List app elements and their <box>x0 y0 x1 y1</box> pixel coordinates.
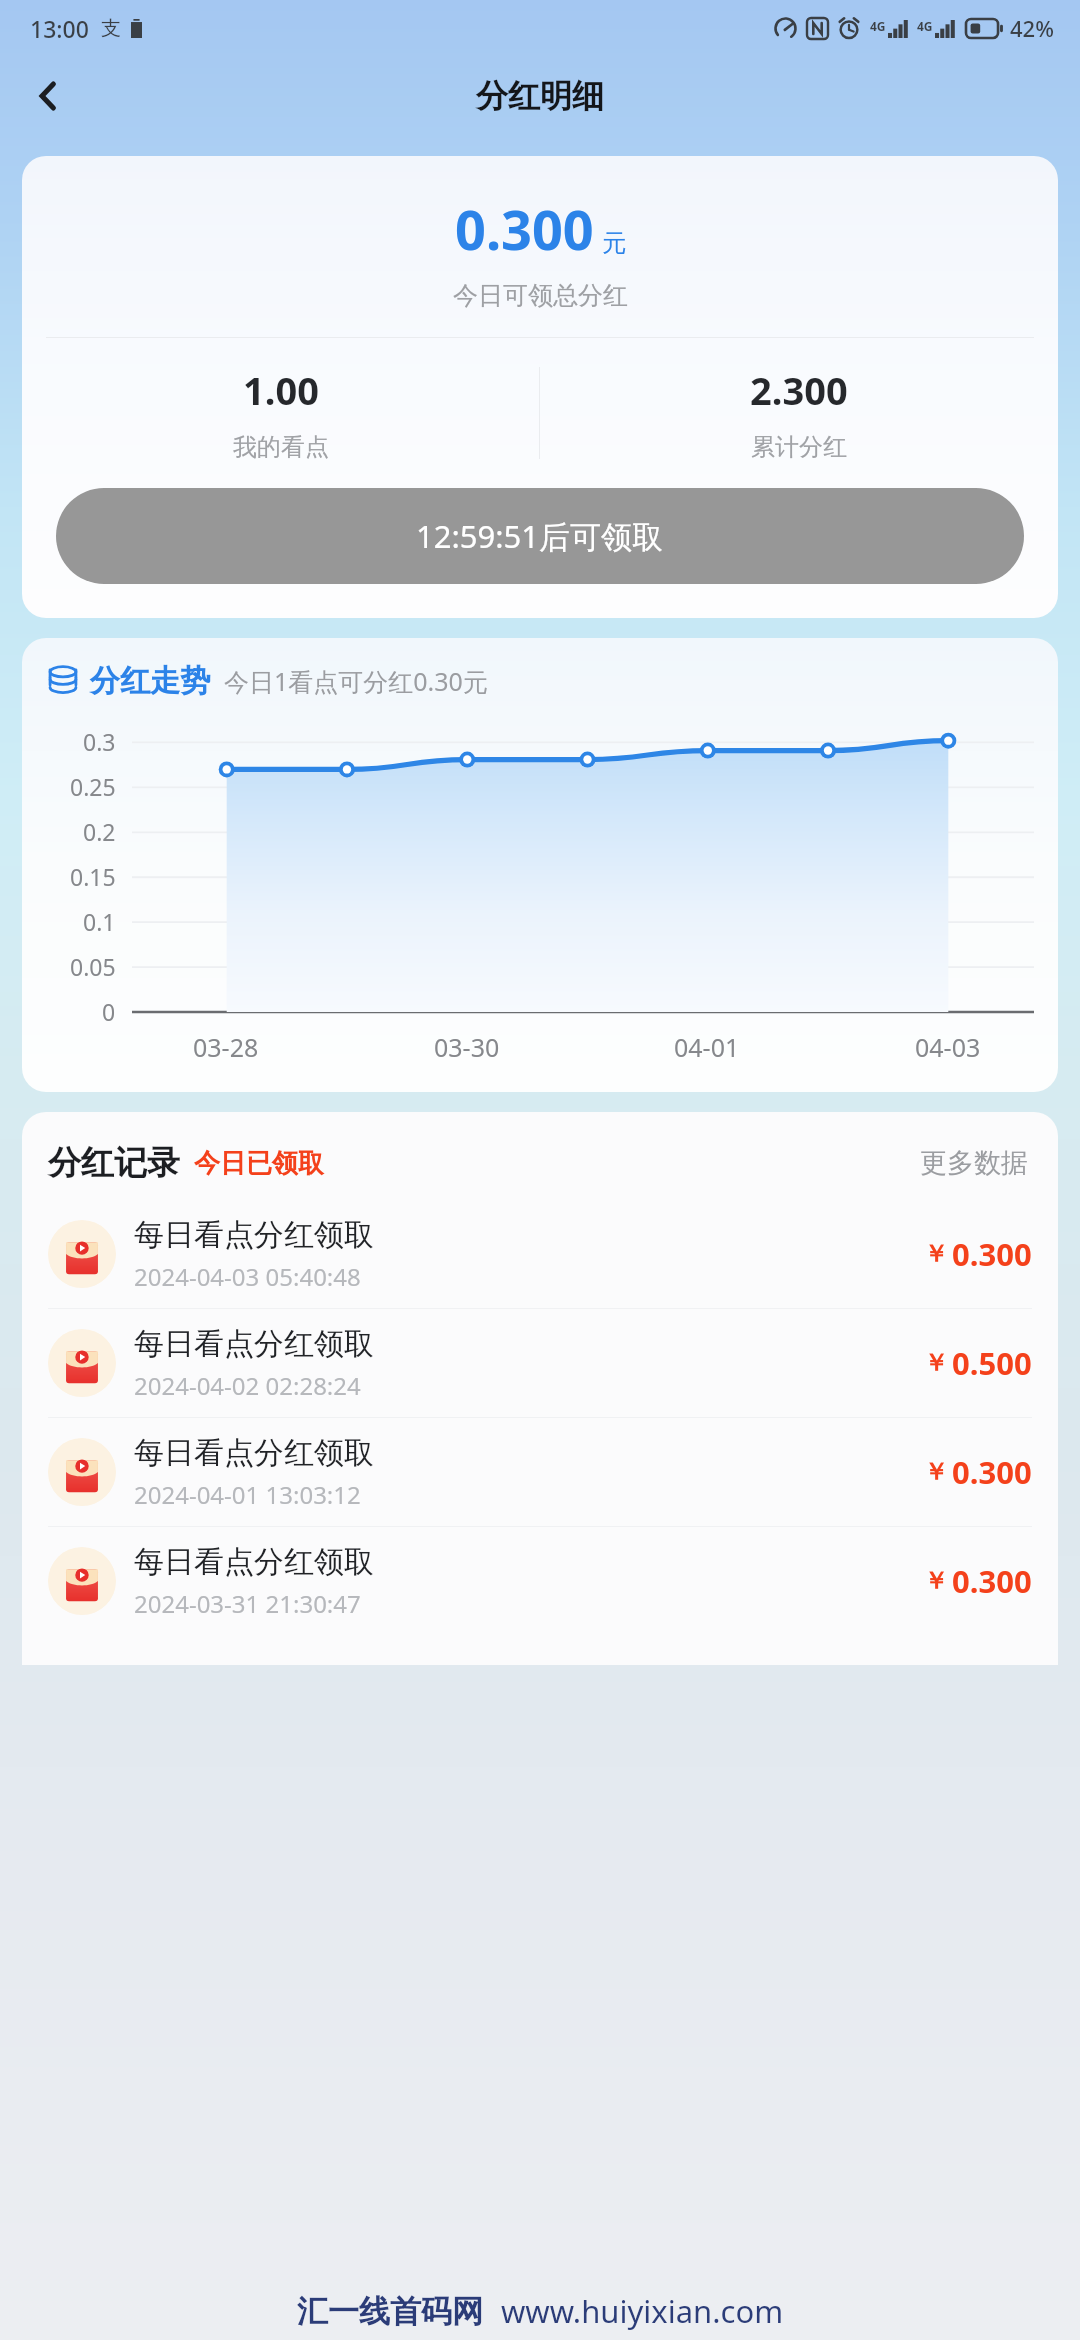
staticText: ￥ <box>924 1348 948 1378</box>
staticText: 分红明细 <box>476 76 604 116</box>
staticText: 0.300 <box>952 1233 1032 1275</box>
button[interactable]: 12:59:51后可领取 <box>56 488 1024 584</box>
staticText: www.huiyixian.com <box>501 2290 784 2332</box>
staticText: 每日看点分红领取 <box>134 1434 374 1472</box>
staticText: 0.500 <box>952 1342 1032 1384</box>
button[interactable]: 返回 <box>12 60 84 132</box>
staticText: 0.2 <box>83 816 116 847</box>
staticText: 42% <box>1010 13 1054 43</box>
staticText: 支 <box>101 16 121 41</box>
staticText: 03-30 <box>434 1030 500 1064</box>
staticText: 分红记录 <box>48 1142 180 1184</box>
staticText: 04-01 <box>674 1030 740 1064</box>
staticText: 4G <box>917 18 933 34</box>
staticText: 0 <box>102 996 116 1027</box>
staticText: 0.300 <box>952 1451 1032 1493</box>
staticText: 0.300 <box>455 192 594 266</box>
staticText: 每日看点分红领取 <box>134 1216 374 1254</box>
staticText: 今日已领取 <box>194 1147 324 1180</box>
button[interactable]: 更多数据 <box>916 1142 1032 1184</box>
staticText: 4G <box>870 18 886 34</box>
staticText: 每日看点分红领取 <box>134 1325 374 1363</box>
staticText: 0.1 <box>83 906 116 937</box>
button[interactable]: 每日看点分红领取 <box>22 1200 1058 1308</box>
staticText: 元 <box>602 228 626 258</box>
staticText: 2024-03-31 21:30:47 <box>134 1587 361 1620</box>
staticText: ￥ <box>924 1566 948 1596</box>
staticText: 2.300 <box>750 364 848 416</box>
staticText: 汇一线首码网 <box>297 2292 483 2331</box>
staticText: 03-28 <box>193 1030 259 1064</box>
staticText: 我的看点 <box>233 432 329 462</box>
staticText: 0.3 <box>83 726 116 757</box>
staticText: ￥ <box>924 1239 948 1269</box>
staticText: ￥ <box>924 1457 948 1487</box>
staticText: 13:00 <box>30 13 89 44</box>
button[interactable]: 每日看点分红领取 <box>22 1309 1058 1417</box>
staticText: 0.05 <box>70 951 116 982</box>
staticText: 今日1看点可分红0.30元 <box>224 664 488 698</box>
button[interactable]: 每日看点分红领取 <box>22 1418 1058 1526</box>
staticText: 2024-04-03 05:40:48 <box>134 1260 361 1293</box>
staticText: 2024-04-02 02:28:24 <box>134 1369 361 1402</box>
staticText: 更多数据 <box>920 1146 1028 1180</box>
staticText: 0.300 <box>952 1560 1032 1602</box>
staticText: 今日可领总分红 <box>453 280 628 311</box>
staticText: 1.00 <box>243 364 319 416</box>
staticText: 04-03 <box>915 1030 981 1064</box>
button[interactable]: 每日看点分红领取 <box>22 1527 1058 1635</box>
staticText: 每日看点分红领取 <box>134 1543 374 1581</box>
staticText: 0.25 <box>70 771 116 802</box>
staticText: 0.15 <box>70 861 116 892</box>
staticText: 累计分红 <box>751 432 847 462</box>
staticText: 2024-04-01 13:03:12 <box>134 1478 361 1511</box>
staticText: 分红走势 <box>90 662 210 700</box>
staticText: 12:59:51后可领取 <box>416 515 664 557</box>
